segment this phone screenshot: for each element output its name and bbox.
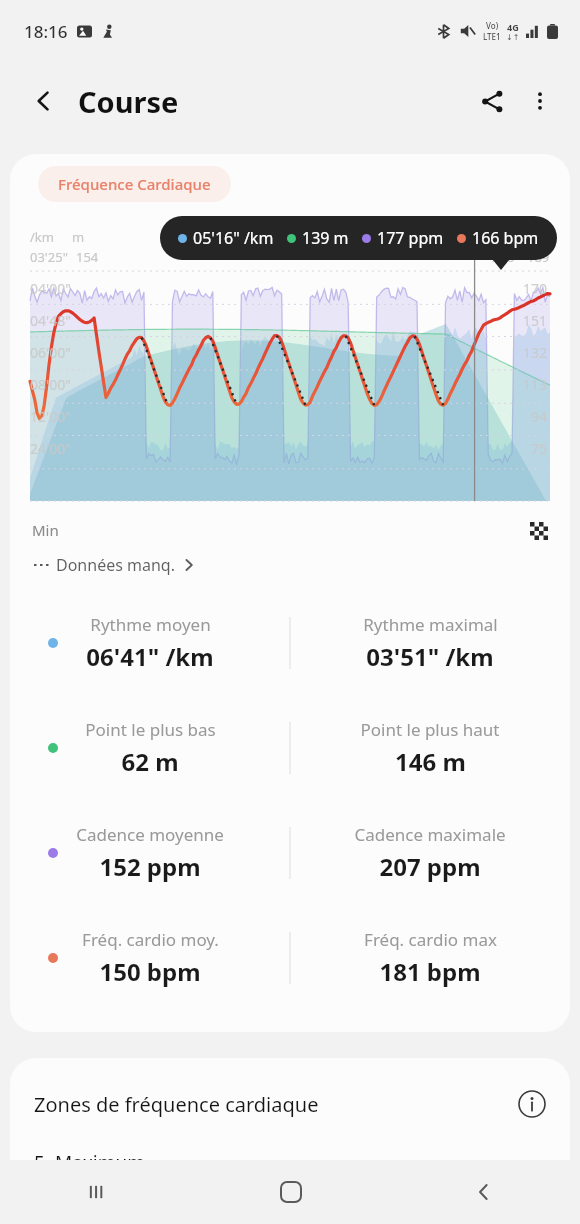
- button[interactable]: Rythme maximal: [290, 590, 570, 695]
- other: Info: [518, 1090, 546, 1118]
- staticText: 150 bpm: [99, 955, 201, 988]
- staticText: 181 bpm: [379, 955, 481, 988]
- button[interactable]: Fréq. cardio moy.: [10, 905, 290, 1010]
- button[interactable]: Cadence moyenne: [10, 800, 290, 905]
- button[interactable]: Home: [194, 1160, 387, 1224]
- staticText: ↓↑: [506, 33, 520, 42]
- staticText: Fréquence Cardiaque: [58, 174, 211, 194]
- button[interactable]: Zones de fréquence cardiaque: [10, 1058, 570, 1150]
- staticText: 152 ppm: [99, 850, 201, 883]
- staticText: Point le plus bas: [85, 718, 216, 741]
- staticText: 04'48": [30, 311, 71, 330]
- staticText: 113: [523, 375, 548, 394]
- staticText: Cadence maximale: [354, 823, 506, 846]
- staticText: 207 ppm: [379, 850, 481, 883]
- staticText: Course: [78, 82, 179, 121]
- button[interactable]: Point le plus haut: [290, 695, 570, 800]
- staticText: Point le plus haut: [360, 718, 500, 741]
- staticText: 151: [523, 311, 548, 330]
- staticText: Cadence moyenne: [76, 823, 224, 846]
- staticText: LTE1: [483, 31, 501, 42]
- button[interactable]: Recents: [0, 1160, 194, 1224]
- button[interactable]: Cadence maximale: [290, 800, 570, 905]
- staticText: 5. Maximum: [34, 1150, 146, 1176]
- staticText: 177 ppm: [377, 227, 444, 249]
- staticText: 03'25": [30, 248, 68, 266]
- staticText: 75: [531, 439, 548, 458]
- staticText: Rythme maximal: [363, 613, 498, 636]
- button[interactable]: Back: [22, 79, 66, 123]
- staticText: 18:16: [24, 20, 68, 43]
- staticText: bpm: [521, 228, 550, 246]
- staticText: 166 bpm: [472, 227, 539, 249]
- staticText: Zones de fréquence cardiaque: [34, 1091, 319, 1118]
- staticText: 06'00": [30, 343, 71, 362]
- staticText: Fréq. cardio moy.: [82, 928, 219, 951]
- staticText: 206: [492, 248, 515, 266]
- staticText: 03'51" /km: [366, 640, 494, 673]
- staticText: 189: [527, 248, 550, 266]
- staticText: 170: [523, 279, 548, 298]
- staticText: m: [72, 228, 85, 246]
- staticText: /km: [30, 228, 54, 246]
- button[interactable]: Fréquence Cardiaque: [38, 166, 231, 202]
- button[interactable]: Données manq.: [34, 554, 196, 576]
- staticText: 4G: [507, 21, 519, 33]
- staticText: 94: [531, 407, 548, 426]
- staticText: Rythme moyen: [90, 613, 211, 636]
- button[interactable]: Fréq. cardio max: [290, 905, 570, 1010]
- button[interactable]: Back: [387, 1160, 580, 1224]
- staticText: 24'00": [30, 439, 71, 458]
- button[interactable]: Rythme moyen: [10, 590, 290, 695]
- staticText: ppm: [478, 228, 507, 246]
- staticText: 05'16" /km: [193, 227, 274, 249]
- staticText: 146 m: [395, 745, 466, 778]
- staticText: 62 m: [121, 745, 179, 778]
- button[interactable]: Share: [468, 77, 516, 125]
- staticText: 139 m: [302, 227, 349, 249]
- button[interactable]: Point le plus bas: [10, 695, 290, 800]
- staticText: Vo): [486, 20, 499, 31]
- button[interactable]: More options: [516, 77, 564, 125]
- staticText: Fréq. cardio max: [364, 928, 497, 951]
- staticText: Données manq.: [56, 554, 175, 576]
- staticText: 06'41" /km: [86, 640, 214, 673]
- staticText: Min: [32, 520, 59, 540]
- staticText: 132: [523, 343, 548, 362]
- staticText: 08'00": [30, 375, 71, 394]
- staticText: 04'00": [30, 279, 71, 298]
- staticText: 154: [76, 248, 99, 266]
- staticText: 12'00": [30, 407, 71, 426]
